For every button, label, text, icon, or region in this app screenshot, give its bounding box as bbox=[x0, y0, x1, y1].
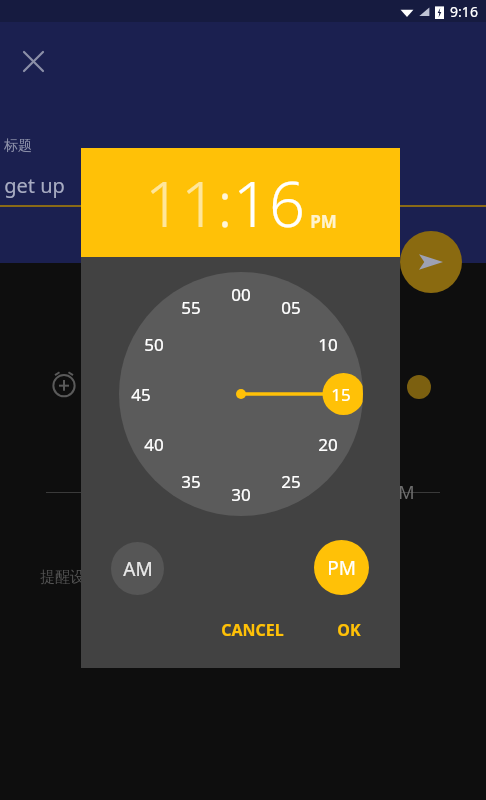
staticText: 25 bbox=[281, 470, 301, 493]
button[interactable]: AM bbox=[111, 542, 164, 595]
staticText: 40 bbox=[144, 433, 164, 456]
staticText: : bbox=[217, 160, 233, 246]
staticText: 15 bbox=[331, 383, 351, 406]
staticText: M bbox=[398, 480, 415, 505]
button[interactable]: Send bbox=[400, 231, 462, 293]
button[interactable]: 11 bbox=[145, 160, 217, 246]
staticText: 20 bbox=[318, 433, 338, 456]
button[interactable]: OK bbox=[329, 611, 369, 649]
staticText: 35 bbox=[181, 470, 201, 493]
staticText: 11 bbox=[145, 160, 217, 246]
staticText: 9:16 bbox=[450, 2, 478, 21]
button[interactable]: CANCEL bbox=[213, 611, 292, 649]
staticText: PM bbox=[310, 210, 337, 233]
staticText: 05 bbox=[281, 296, 301, 319]
staticText: 标题 bbox=[4, 137, 32, 155]
button[interactable]: 00 bbox=[119, 272, 363, 516]
staticText: 10 bbox=[318, 333, 338, 356]
staticText: get up bbox=[4, 172, 65, 199]
staticText: 30 bbox=[231, 483, 251, 506]
staticText: 16 bbox=[233, 160, 305, 246]
staticText: CANCEL bbox=[221, 619, 284, 641]
staticText: 提醒设 bbox=[40, 568, 85, 587]
staticText: PM bbox=[327, 555, 356, 581]
button[interactable]: Close bbox=[14, 42, 52, 80]
staticText: 50 bbox=[144, 333, 164, 356]
staticText: 45 bbox=[131, 383, 151, 406]
staticText: 55 bbox=[181, 296, 201, 319]
staticText: 00 bbox=[231, 283, 251, 306]
staticText: OK bbox=[337, 619, 361, 641]
button[interactable]: PM bbox=[314, 540, 369, 595]
staticText: AM bbox=[123, 556, 153, 582]
button[interactable]: PM bbox=[310, 210, 337, 233]
button[interactable]: 16 bbox=[233, 160, 305, 246]
